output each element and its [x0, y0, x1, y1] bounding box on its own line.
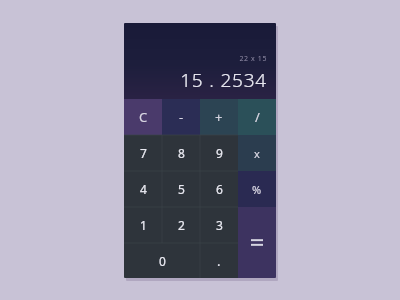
button[interactable]: 9 — [200, 135, 238, 171]
button[interactable]: Minus — [162, 99, 200, 135]
staticText: / — [255, 108, 260, 126]
button[interactable]: Percent — [238, 171, 276, 207]
staticText: 8 — [178, 145, 185, 161]
button[interactable]: 3 — [200, 207, 238, 243]
staticText: 2 — [178, 217, 185, 233]
staticText: 5 — [178, 181, 185, 197]
button[interactable]: 7 — [124, 135, 162, 171]
button[interactable]: 6 — [200, 171, 238, 207]
staticText: 6 — [216, 181, 223, 197]
button[interactable]: Equals — [238, 207, 276, 278]
button[interactable]: 2 — [162, 207, 200, 243]
button[interactable]: . — [200, 243, 238, 278]
staticText: . — [217, 252, 221, 270]
staticText: 0 — [159, 253, 166, 269]
staticText: 22 x 15 — [239, 54, 267, 64]
staticText: 15 . 2534 — [180, 67, 267, 93]
staticText: 7 — [140, 145, 147, 161]
button[interactable]: 1 — [124, 207, 162, 243]
button[interactable]: Divide — [238, 99, 276, 135]
staticText: % — [252, 182, 262, 197]
button[interactable]: Plus — [200, 99, 238, 135]
button[interactable]: Clear — [124, 99, 162, 135]
staticText: 4 — [140, 181, 147, 197]
button[interactable]: 5 — [162, 171, 200, 207]
staticText: - — [179, 108, 184, 126]
button[interactable]: 0 — [124, 243, 200, 278]
staticText: x — [254, 146, 260, 161]
button[interactable]: 4 — [124, 171, 162, 207]
staticText: 1 — [140, 217, 147, 233]
button[interactable]: 8 — [162, 135, 200, 171]
staticText: C — [139, 108, 148, 126]
staticText: 9 — [216, 145, 223, 161]
button[interactable]: Multiply — [238, 135, 276, 171]
staticText: 3 — [216, 217, 223, 233]
staticText: + — [215, 108, 223, 126]
